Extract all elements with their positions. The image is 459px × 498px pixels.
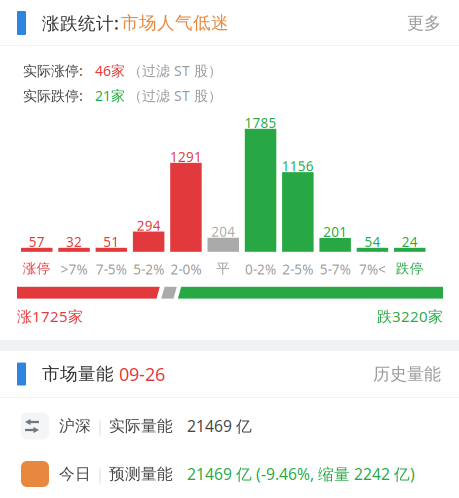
staticText: 57 — [29, 232, 45, 251]
staticText: 5-2% — [133, 260, 164, 278]
staticText: 2-0% — [170, 260, 201, 278]
staticText: 0-2% — [245, 260, 276, 278]
staticText: 市场量能 — [42, 363, 114, 385]
staticText: 平 — [216, 260, 230, 277]
staticText: 201 — [323, 223, 347, 241]
staticText: 实际量能 — [109, 416, 173, 436]
staticText: 294 — [137, 216, 161, 235]
button[interactable]: 今日 — [21, 460, 441, 488]
staticText: 51 — [103, 232, 119, 251]
staticText: 更多 — [407, 12, 441, 34]
staticText: 跌3220家 — [377, 306, 443, 326]
staticText: >7% — [60, 260, 87, 278]
button[interactable]: 市场量能 — [0, 351, 459, 397]
staticText: 涨跌统计: — [42, 11, 119, 35]
staticText: 1291 — [170, 147, 202, 166]
staticText: 沪深 — [59, 416, 91, 436]
staticText: 历史量能 — [373, 363, 441, 385]
staticText: 1156 — [282, 157, 314, 175]
staticText: 21家 — [95, 86, 125, 105]
staticText: 54 — [364, 232, 380, 251]
staticText: （过滤 ST 股） — [128, 86, 222, 105]
staticText: 32 — [66, 232, 82, 251]
staticText: 预测量能 — [109, 464, 173, 484]
staticText: （过滤 ST 股） — [128, 61, 222, 80]
staticText: 2-5% — [282, 260, 313, 278]
staticText: 涨停 — [23, 260, 51, 277]
staticText: 204 — [211, 222, 235, 241]
staticText: 实际涨停: — [23, 61, 83, 80]
staticText: 21469 亿 — [187, 415, 252, 437]
staticText: 21469 亿 (-9.46%, 缩量 2242 亿) — [187, 463, 415, 485]
staticText: 7-5% — [96, 260, 127, 278]
staticText: 09-26 — [119, 362, 165, 386]
staticText: | — [96, 416, 104, 436]
staticText: 46家 — [95, 61, 125, 80]
staticText: | — [96, 464, 104, 484]
staticText: 7%< — [359, 260, 386, 278]
staticText: 涨1725家 — [17, 306, 83, 326]
staticText: 跌停 — [396, 260, 424, 277]
staticText: 市场人气低迷 — [121, 12, 229, 34]
staticText: 实际跌停: — [23, 86, 83, 105]
staticText: 今日 — [59, 464, 91, 484]
staticText: 5-7% — [320, 260, 351, 278]
staticText: 24 — [402, 232, 418, 251]
button[interactable]: 涨跌统计: — [0, 0, 459, 46]
staticText: 1785 — [244, 113, 276, 132]
button[interactable]: 沪深 — [21, 412, 441, 440]
